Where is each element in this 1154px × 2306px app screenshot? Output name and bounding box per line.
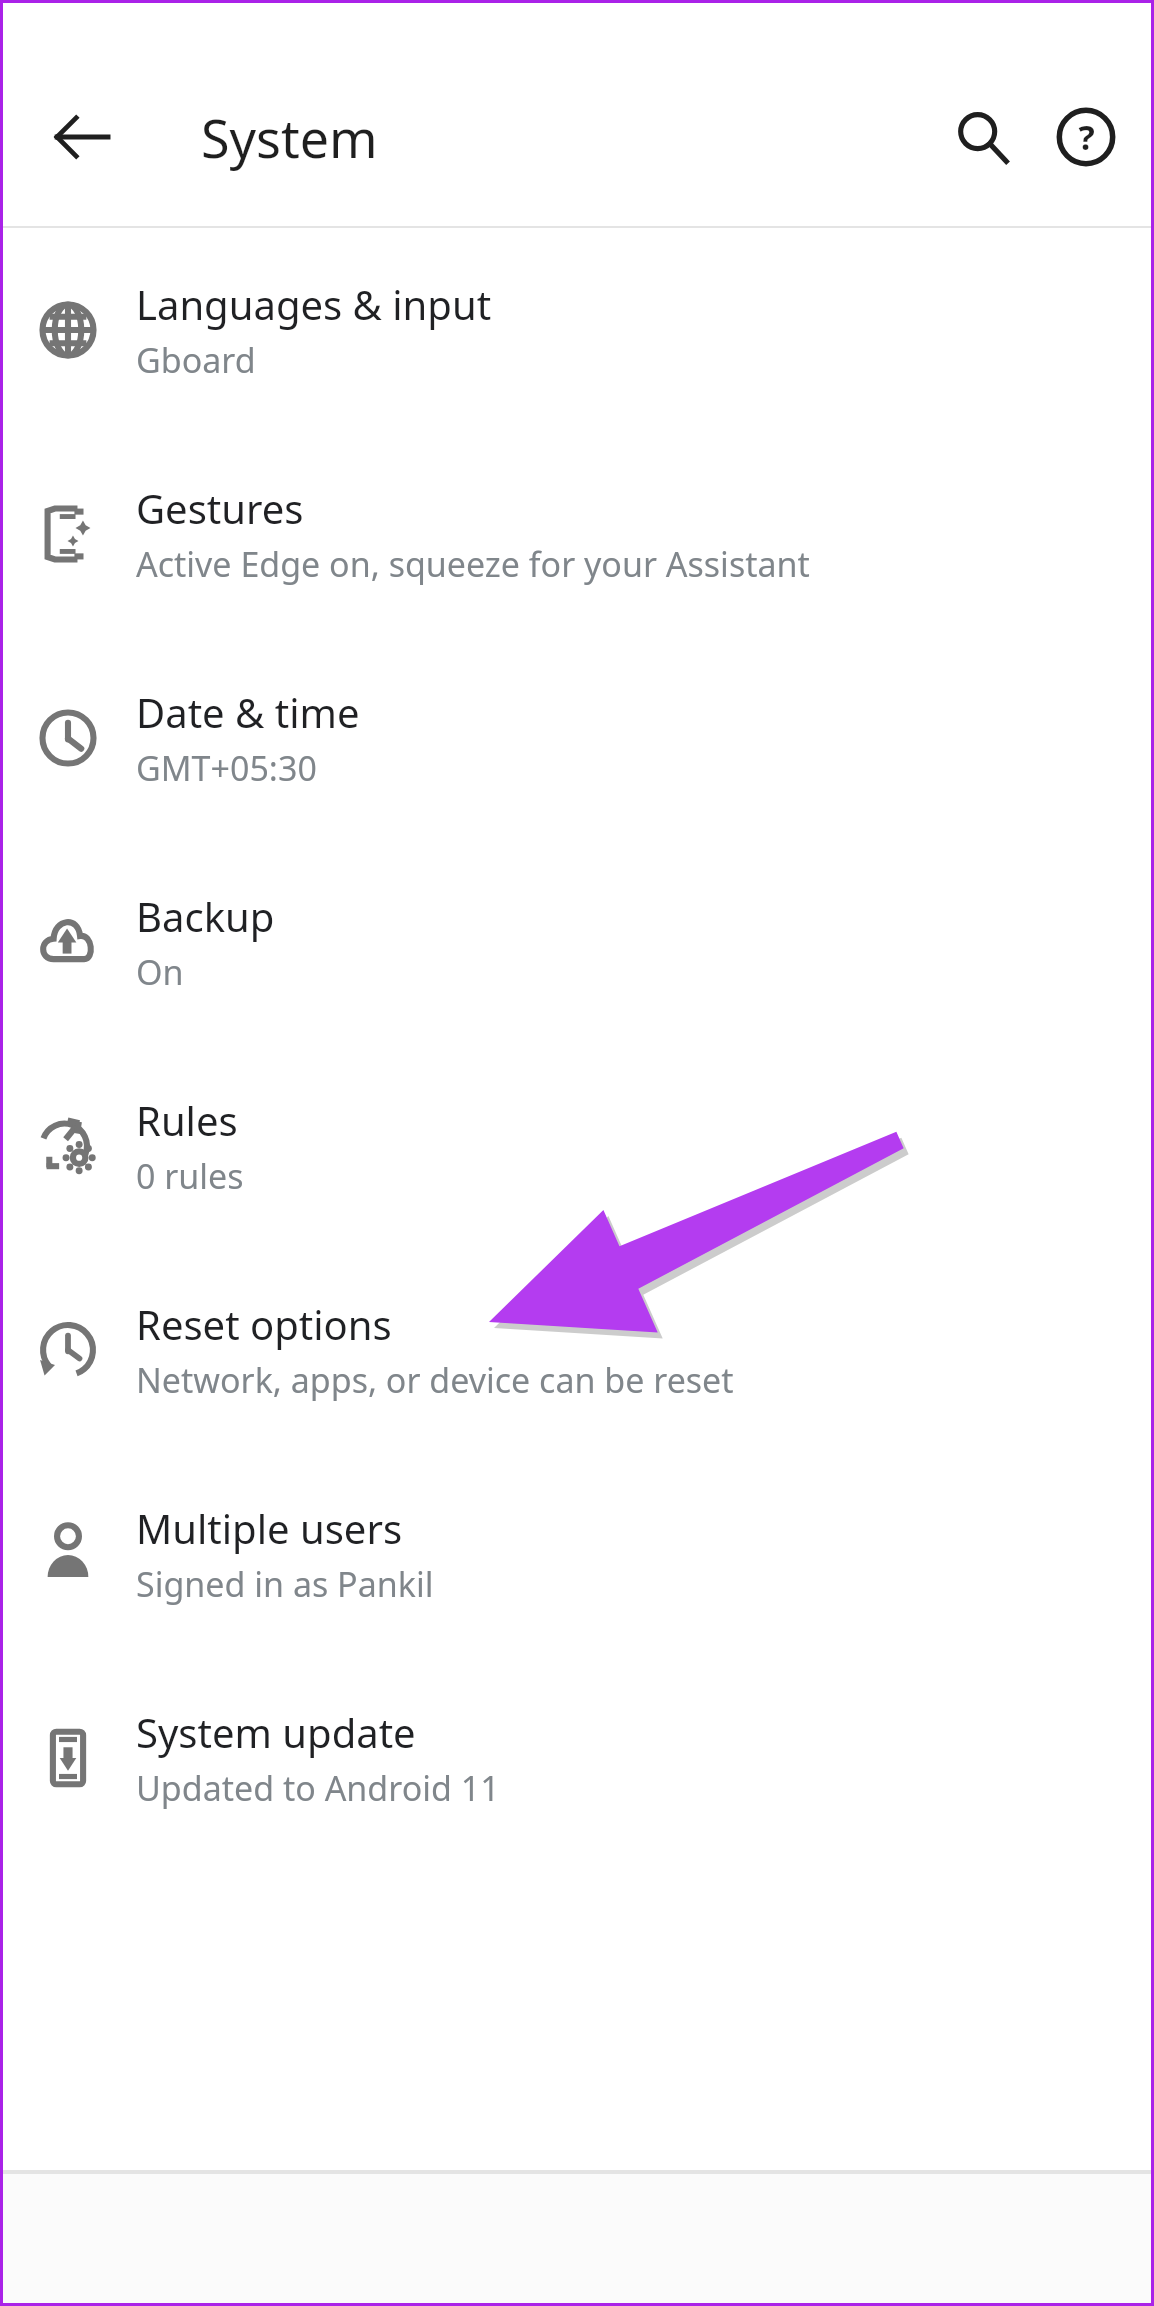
button[interactable]: Multiple users (0, 1452, 1154, 1656)
staticText: ? (1078, 114, 1095, 160)
button[interactable]: Back (40, 95, 124, 179)
staticText: Active Edge on, squeeze for your Assista… (136, 541, 810, 587)
staticText: 0 rules (136, 1153, 244, 1199)
staticText: Date & time (136, 685, 360, 739)
staticText: GMT+05:30 (136, 745, 317, 791)
button[interactable]: Backup (0, 840, 1154, 1044)
button[interactable]: Date & time (0, 636, 1154, 840)
staticText: Gestures (136, 481, 304, 535)
button[interactable]: System update (0, 1656, 1154, 1860)
staticText: Multiple users (136, 1501, 403, 1555)
staticText: System (201, 102, 378, 173)
staticText: Backup (136, 889, 275, 943)
button[interactable]: Languages & input (0, 228, 1154, 432)
button[interactable]: Search (938, 93, 1026, 181)
button[interactable]: Help (1042, 93, 1130, 181)
staticText: Signed in as Pankil (136, 1561, 434, 1607)
staticText: System update (136, 1705, 416, 1759)
staticText: Network, apps, or device can be reset (136, 1357, 734, 1403)
staticText: Gboard (136, 337, 256, 383)
staticText: Updated to Android 11 (136, 1765, 500, 1811)
staticText: Reset options (136, 1297, 392, 1351)
button[interactable]: Rules (0, 1044, 1154, 1248)
button[interactable]: Gestures (0, 432, 1154, 636)
staticText: Rules (136, 1093, 238, 1147)
staticText: Languages & input (136, 277, 492, 331)
button[interactable]: Reset options (0, 1248, 1154, 1452)
staticText: On (136, 949, 184, 995)
